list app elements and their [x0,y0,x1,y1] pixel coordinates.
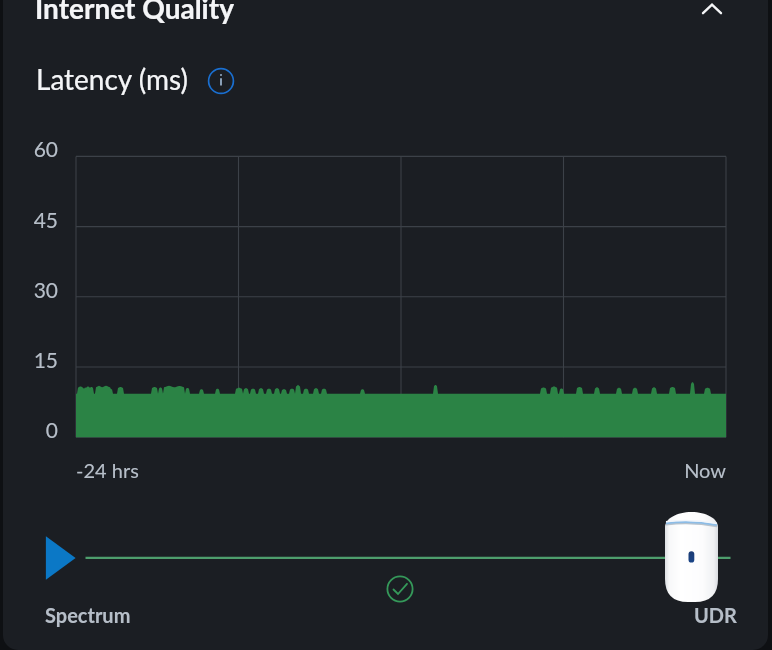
staticText: Latency (ms) [36,62,189,96]
button[interactable]: Internet Quality [3,0,768,34]
staticText: UDR [694,603,737,627]
button[interactable]: UDR [694,603,737,627]
button[interactable]: Collapse section [694,0,730,28]
staticText: 60 [1,136,58,161]
staticText: Now [626,458,726,482]
staticText: 45 [1,207,58,232]
staticText: 0 [1,417,58,442]
staticText: -24 hrs [76,458,139,482]
button[interactable]: Spectrum [45,603,131,627]
staticText: 15 [1,347,58,372]
staticText: 30 [1,277,58,302]
button[interactable]: Info [208,66,234,92]
staticText: Internet Quality [35,0,234,25]
staticText: Spectrum [45,603,131,627]
button[interactable]: UDR device [665,512,718,602]
